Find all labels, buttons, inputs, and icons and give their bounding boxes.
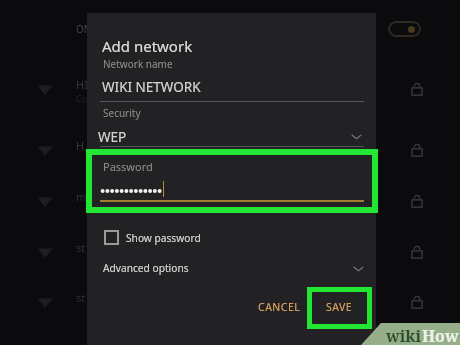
button[interactable]: Show password xyxy=(100,227,207,248)
staticText: WEP xyxy=(98,128,127,146)
staticText: st xyxy=(76,240,86,255)
staticText: Co xyxy=(76,92,88,104)
button[interactable]: SAVE xyxy=(317,294,362,320)
button[interactable] xyxy=(0,126,87,174)
staticText: st xyxy=(76,290,86,305)
staticText: Security xyxy=(103,106,141,120)
staticText: Network name xyxy=(103,57,173,71)
button[interactable] xyxy=(0,177,87,225)
staticText: CANCEL xyxy=(258,300,301,314)
staticText: SAVE xyxy=(326,300,353,314)
staticText: Advanced options xyxy=(103,261,189,275)
button[interactable] xyxy=(0,228,87,276)
button[interactable]: CANCEL xyxy=(249,294,310,320)
button[interactable] xyxy=(0,65,87,113)
button[interactable] xyxy=(0,278,87,326)
staticText: m xyxy=(76,189,87,204)
staticText: ON xyxy=(76,22,92,36)
staticText: wiki xyxy=(386,325,422,345)
staticText: HI xyxy=(76,77,88,92)
staticText: Show password xyxy=(126,231,201,245)
button[interactable]: Advanced options xyxy=(99,258,364,278)
button[interactable]: Wi-Fi toggle xyxy=(388,21,421,37)
staticText: Add network xyxy=(102,36,193,56)
staticText: H xyxy=(76,138,85,153)
staticText: WIKI NETWORK xyxy=(102,78,201,96)
staticText: How xyxy=(422,325,459,345)
staticText: Password xyxy=(103,159,153,174)
